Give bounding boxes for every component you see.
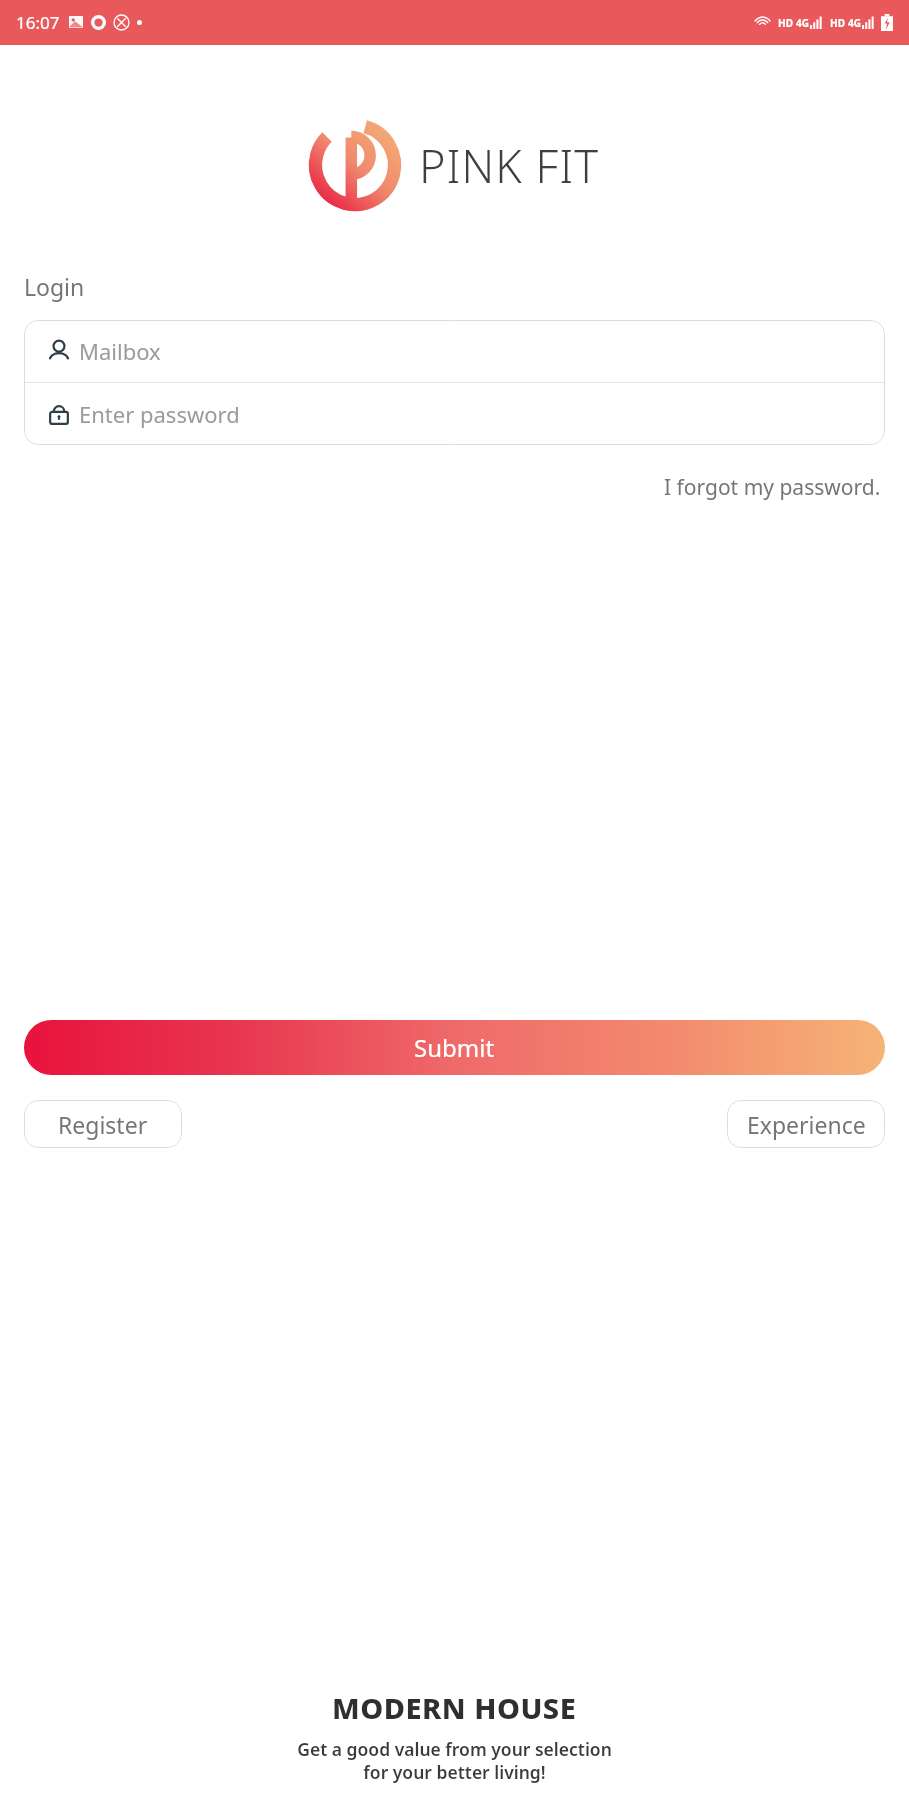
button[interactable]: Register (24, 1100, 182, 1148)
staticText: Mailbox (79, 336, 161, 366)
staticText: Register (58, 1109, 148, 1140)
staticText: Get a good value from your selection for… (297, 1737, 612, 1784)
staticText: I forgot my password. (664, 473, 881, 502)
staticText: Login (24, 271, 85, 302)
staticText: Experience (747, 1109, 866, 1140)
button[interactable]: Mailbox (24, 320, 885, 382)
button[interactable]: I forgot my password. (660, 469, 885, 506)
staticText: PINK FIT (419, 135, 600, 196)
button[interactable]: Experience (727, 1100, 885, 1148)
button[interactable]: Enter password (24, 383, 885, 445)
staticText: HD (830, 16, 845, 30)
staticText: HD (778, 16, 793, 30)
staticText: MODERN HOUSE (332, 1688, 577, 1727)
staticText: 4G (796, 16, 809, 30)
staticText: Submit (414, 1031, 495, 1064)
staticText: 4G (848, 16, 861, 30)
staticText: 16:07 (16, 11, 60, 34)
staticText: Enter password (79, 399, 240, 429)
button[interactable]: Submit (24, 1020, 885, 1075)
